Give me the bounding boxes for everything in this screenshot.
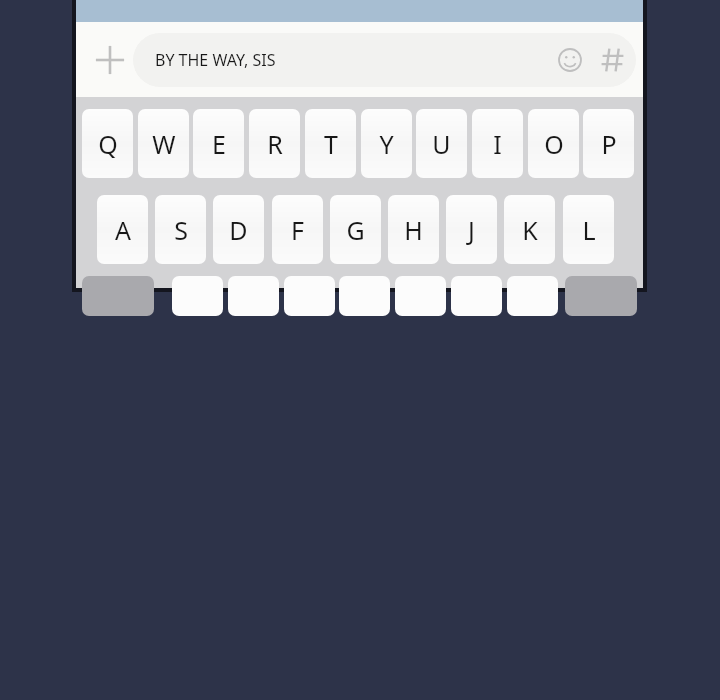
staticText: H	[404, 213, 423, 247]
staticText: BY THE WAY, SIS	[155, 49, 276, 71]
button[interactable]: Hashtag	[590, 37, 636, 83]
button[interactable]	[284, 276, 335, 316]
staticText: G	[346, 213, 365, 247]
button[interactable]: Shift	[82, 276, 154, 316]
button[interactable]: K	[504, 195, 555, 264]
staticText: I	[493, 127, 502, 161]
button[interactable]: F	[272, 195, 323, 264]
staticText: W	[152, 127, 176, 161]
button[interactable]: Y	[361, 109, 412, 178]
button[interactable]	[172, 276, 223, 316]
button[interactable]: W	[138, 109, 189, 178]
button[interactable]: E	[193, 109, 244, 178]
button[interactable]	[228, 276, 279, 316]
staticText: P	[601, 127, 617, 161]
staticText: U	[432, 127, 451, 161]
staticText: L	[582, 213, 596, 247]
button[interactable]	[507, 276, 558, 316]
button[interactable]: S	[155, 195, 206, 264]
button[interactable]: Q	[82, 109, 133, 178]
button[interactable]	[451, 276, 502, 316]
staticText: F	[291, 213, 304, 247]
staticText: R	[267, 127, 283, 161]
staticText: D	[229, 213, 248, 247]
button[interactable]: A	[97, 195, 148, 264]
button[interactable]: R	[249, 109, 300, 178]
staticText: J	[468, 213, 475, 247]
button[interactable]: H	[388, 195, 439, 264]
button[interactable]: P	[583, 109, 634, 178]
staticText: O	[544, 127, 564, 161]
button[interactable]: U	[416, 109, 467, 178]
button[interactable]: BY THE WAY, SIS	[133, 33, 636, 87]
button[interactable]	[395, 276, 446, 316]
staticText: T	[324, 127, 338, 161]
button[interactable]: Add attachment	[82, 32, 138, 88]
staticText: Q	[98, 127, 118, 161]
button[interactable]: O	[528, 109, 579, 178]
button[interactable]: L	[563, 195, 614, 264]
staticText: K	[522, 213, 538, 247]
staticText: A	[115, 213, 131, 247]
staticText: E	[212, 127, 226, 161]
button[interactable]: Emoji	[550, 40, 590, 80]
button[interactable]: T	[305, 109, 356, 178]
button[interactable]: J	[446, 195, 497, 264]
button[interactable]: G	[330, 195, 381, 264]
staticText: Y	[379, 127, 394, 161]
button[interactable]: D	[213, 195, 264, 264]
button[interactable]: Delete	[565, 276, 637, 316]
button[interactable]: I	[472, 109, 523, 178]
staticText: S	[174, 213, 188, 247]
button[interactable]	[339, 276, 390, 316]
